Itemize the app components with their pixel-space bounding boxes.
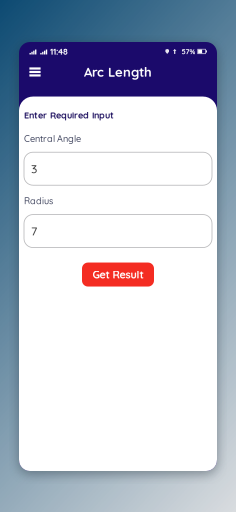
staticText: Radius [24,195,53,206]
staticText: 3 [31,161,37,176]
button[interactable]: 7 [24,214,212,247]
staticText: 11:48 [50,46,68,57]
staticText: 57% [181,47,195,56]
button[interactable]: Menu [23,61,47,83]
staticText: Get Result [92,268,143,281]
staticText: Enter Required Input [24,109,114,121]
button[interactable]: Get Result [82,262,154,286]
staticText: Central Angle [24,133,81,144]
staticText: Arc Length [84,64,152,80]
staticText: 7 [31,223,37,238]
button[interactable]: 3 [24,152,212,185]
